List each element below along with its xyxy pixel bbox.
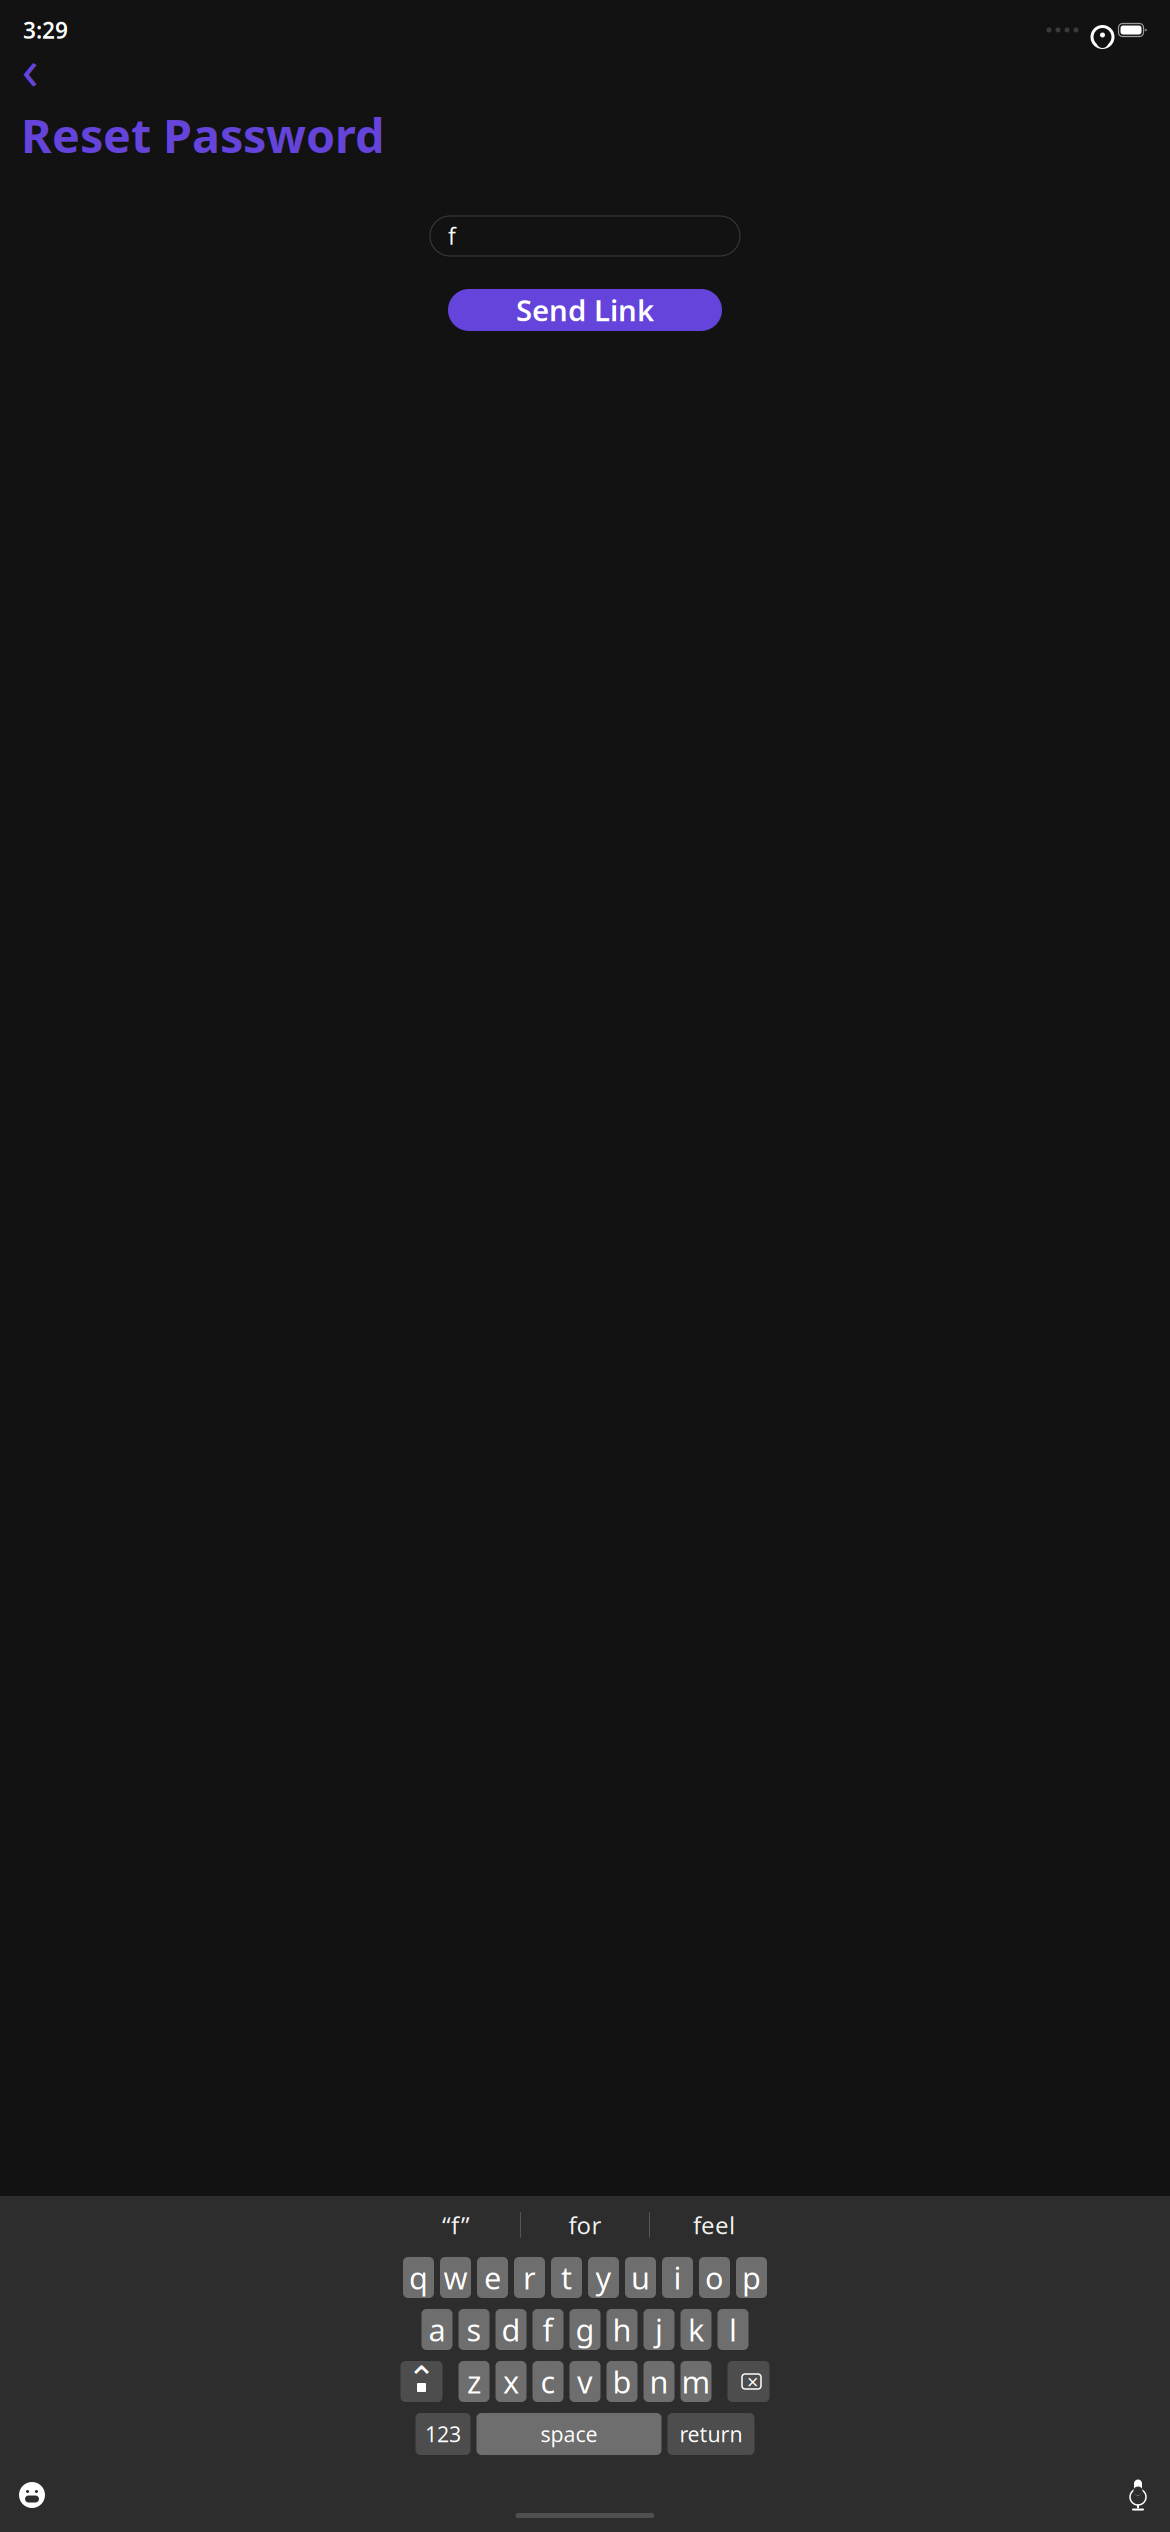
button[interactable]: Dictation: [1118, 2475, 1158, 2515]
staticText: ‹: [21, 31, 38, 105]
staticText: z: [467, 2361, 481, 2402]
staticText: ×: [747, 2368, 758, 2395]
button[interactable]: Shift: [400, 2361, 442, 2402]
button[interactable]: x: [495, 2361, 526, 2402]
button[interactable]: space: [476, 2413, 661, 2455]
button[interactable]: Emoji keyboard: [12, 2475, 52, 2515]
staticText: y: [595, 2257, 611, 2298]
staticText: 123: [425, 2420, 461, 2448]
button[interactable]: i: [662, 2257, 693, 2298]
button[interactable]: Delete: [727, 2361, 769, 2402]
button[interactable]: r: [514, 2257, 545, 2298]
staticText: v: [577, 2361, 593, 2402]
staticText: l: [729, 2309, 737, 2350]
staticText: feel: [693, 2209, 735, 2241]
button[interactable]: g: [569, 2309, 600, 2350]
button[interactable]: e: [477, 2257, 508, 2298]
button[interactable]: feel: [650, 2202, 778, 2248]
staticText: t: [561, 2257, 572, 2298]
staticText: for: [568, 2209, 601, 2241]
button[interactable]: z: [458, 2361, 489, 2402]
staticText: k: [688, 2309, 704, 2350]
button[interactable]: u: [625, 2257, 656, 2298]
button[interactable]: b: [606, 2361, 637, 2402]
staticText: o: [705, 2257, 724, 2298]
staticText: return: [679, 2420, 742, 2448]
staticText: a: [428, 2309, 445, 2350]
button[interactable]: p: [736, 2257, 767, 2298]
staticText: s: [466, 2309, 481, 2350]
button[interactable]: d: [495, 2309, 526, 2350]
button[interactable]: f: [532, 2309, 563, 2350]
staticText: f: [542, 2309, 553, 2350]
button[interactable]: o: [699, 2257, 730, 2298]
button[interactable]: k: [680, 2309, 711, 2350]
staticText: i: [673, 2257, 681, 2298]
staticText: e: [484, 2257, 501, 2298]
staticText: x: [503, 2361, 519, 2402]
button[interactable]: q: [403, 2257, 434, 2298]
button[interactable]: c: [532, 2361, 563, 2402]
button[interactable]: m: [680, 2361, 711, 2402]
staticText: h: [612, 2309, 631, 2350]
staticText: d: [501, 2309, 520, 2350]
button[interactable]: n: [643, 2361, 674, 2402]
staticText: ⌃: [407, 2359, 436, 2398]
button[interactable]: y: [588, 2257, 619, 2298]
button[interactable]: s: [458, 2309, 489, 2350]
button[interactable]: f: [430, 216, 740, 256]
button[interactable]: w: [440, 2257, 471, 2298]
button[interactable]: Back: [8, 46, 52, 90]
staticText: c: [540, 2361, 555, 2402]
button[interactable]: “f”: [392, 2202, 520, 2248]
staticText: space: [540, 2420, 597, 2448]
button[interactable]: for: [521, 2202, 649, 2248]
button[interactable]: l: [717, 2309, 748, 2350]
button[interactable]: v: [569, 2361, 600, 2402]
staticText: 3:29: [23, 15, 68, 45]
button[interactable]: a: [421, 2309, 452, 2350]
staticText: n: [649, 2361, 668, 2402]
staticText: f: [448, 221, 456, 251]
staticText: j: [655, 2309, 663, 2350]
staticText: “f”: [442, 2209, 470, 2241]
button[interactable]: t: [551, 2257, 582, 2298]
staticText: u: [631, 2257, 650, 2298]
button[interactable]: 123: [415, 2413, 470, 2455]
button[interactable]: j: [643, 2309, 674, 2350]
button[interactable]: Send Link: [448, 289, 722, 331]
button[interactable]: return: [667, 2413, 754, 2455]
staticText: w: [443, 2257, 467, 2298]
staticText: Send Link: [516, 290, 654, 329]
staticText: p: [742, 2257, 761, 2298]
staticText: b: [612, 2361, 631, 2402]
staticText: g: [575, 2309, 594, 2350]
staticText: Reset Password: [21, 104, 384, 166]
staticText: m: [681, 2361, 710, 2402]
staticText: q: [409, 2257, 428, 2298]
staticText: r: [523, 2257, 536, 2298]
button[interactable]: h: [606, 2309, 637, 2350]
